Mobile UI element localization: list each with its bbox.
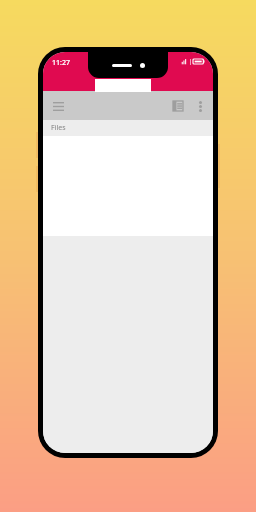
staticText: Files [51,123,66,133]
staticText: 11:27 [52,58,70,68]
button[interactable]: Change view [167,95,189,117]
button[interactable]: Files [43,120,213,136]
button[interactable]: More options [189,95,211,117]
button[interactable]: Open navigation drawer [47,95,69,117]
